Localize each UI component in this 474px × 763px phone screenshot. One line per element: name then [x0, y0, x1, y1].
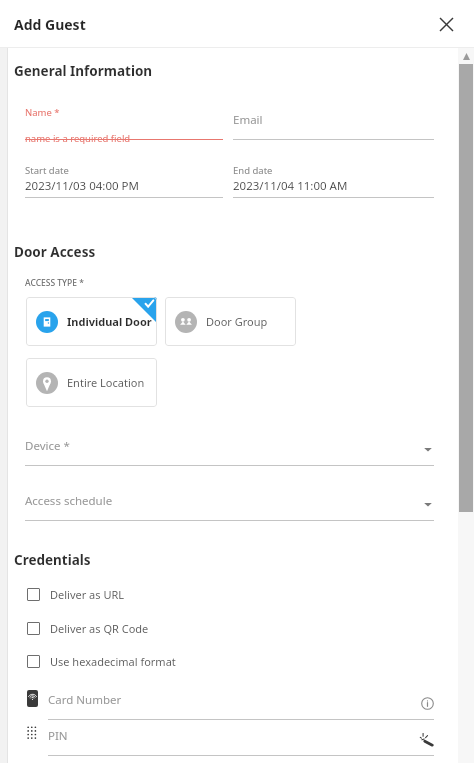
staticText: General Information — [14, 62, 153, 80]
staticText: Add Guest — [14, 15, 86, 34]
button[interactable]: Entire Location — [26, 358, 157, 407]
staticText: Door Access — [14, 243, 96, 261]
button[interactable]: Access schedule — [25, 487, 434, 521]
staticText: ACCESS TYPE * — [25, 277, 84, 289]
button[interactable]: Close — [432, 10, 460, 38]
staticText: Use hexadecimal format — [50, 654, 176, 669]
staticText: 2023/11/04 11:00 AM — [233, 178, 348, 194]
staticText: Deliver as QR Code — [50, 621, 149, 636]
staticText: Card Number — [48, 692, 122, 708]
button[interactable]: Start date — [25, 164, 223, 198]
staticText: Individual Door — [67, 314, 152, 329]
staticText: Email — [233, 112, 263, 128]
button[interactable]: Name * — [25, 106, 223, 140]
button[interactable]: Use hexadecimal format — [27, 650, 176, 672]
staticText: PIN — [48, 728, 68, 744]
button[interactable]: Email — [233, 106, 434, 140]
staticText: Name * — [25, 106, 60, 119]
staticText: Start date — [25, 164, 69, 177]
button[interactable]: PIN — [48, 722, 434, 756]
staticText: Deliver as URL — [50, 587, 125, 602]
staticText: name is a required field — [25, 132, 131, 145]
button[interactable]: End date — [233, 164, 434, 198]
staticText: Entire Location — [67, 375, 145, 390]
button[interactable]: Scroll up — [458, 48, 474, 64]
button[interactable]: Door Group — [165, 297, 296, 346]
staticText: End date — [233, 164, 273, 177]
staticText: Credentials — [14, 551, 91, 569]
staticText: 2023/11/03 04:00 PM — [25, 178, 139, 194]
button[interactable]: Deliver as URL — [27, 583, 125, 605]
button[interactable]: Individual Door — [26, 297, 157, 346]
staticText: Door Group — [206, 314, 268, 329]
button[interactable]: Device * — [25, 432, 434, 466]
button[interactable]: Card Number — [48, 686, 434, 720]
staticText: Access schedule — [25, 493, 113, 509]
button[interactable]: Deliver as QR Code — [27, 617, 149, 639]
staticText: Device * — [25, 438, 70, 454]
